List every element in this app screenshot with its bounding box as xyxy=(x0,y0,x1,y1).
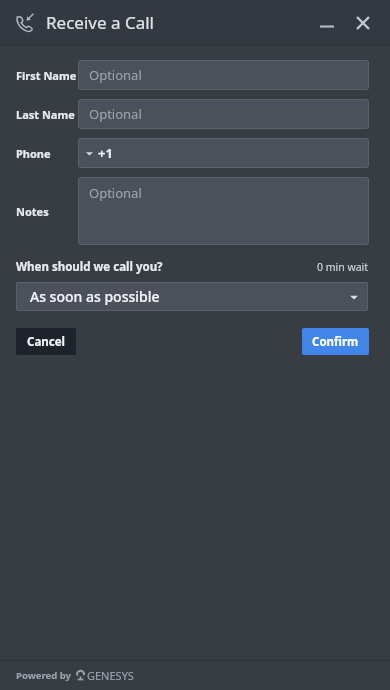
button[interactable]: First Name xyxy=(16,60,369,90)
button[interactable]: Cancel xyxy=(16,328,76,355)
staticText: +1 xyxy=(98,144,113,162)
staticText: Cancel xyxy=(27,334,65,350)
staticText: GENESYS xyxy=(87,668,134,683)
button[interactable]: Minimize xyxy=(312,8,342,38)
button[interactable]: Phone xyxy=(16,138,369,168)
staticText: Last Name xyxy=(16,107,75,122)
button[interactable]: Close xyxy=(348,8,378,38)
staticText: Receive a Call xyxy=(46,11,154,34)
button[interactable]: Confirm xyxy=(302,328,369,355)
button[interactable]: As soon as possible xyxy=(16,282,368,311)
staticText: Confirm xyxy=(312,334,359,350)
button[interactable]: Notes xyxy=(16,177,369,245)
staticText: Optional xyxy=(89,184,142,202)
button[interactable]: Last Name xyxy=(16,99,369,129)
staticText: As soon as possible xyxy=(30,287,160,306)
staticText: When should we call you? xyxy=(16,259,163,275)
staticText: Phone xyxy=(16,146,51,161)
staticText: First Name xyxy=(16,68,77,83)
staticText: Optional xyxy=(89,105,142,123)
staticText: Powered by xyxy=(16,669,71,682)
staticText: Optional xyxy=(89,66,142,84)
staticText: 0 min wait xyxy=(317,260,369,274)
staticText: Notes xyxy=(16,204,49,219)
